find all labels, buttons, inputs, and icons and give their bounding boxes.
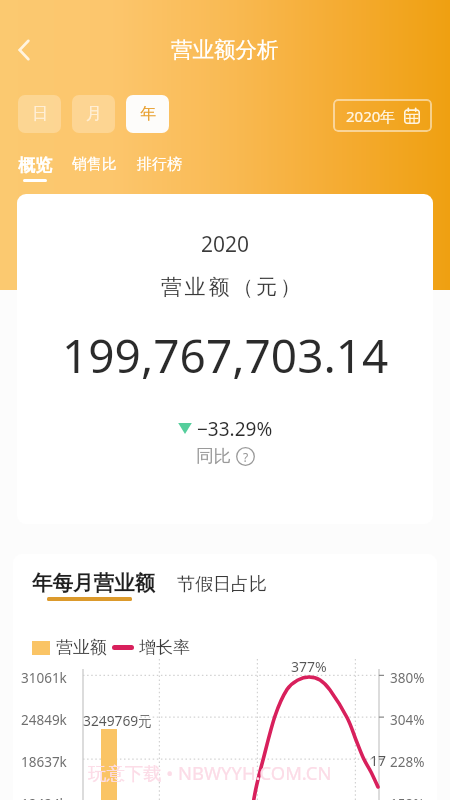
staticText: 152% <box>390 795 425 800</box>
staticText: ? <box>243 449 249 465</box>
staticText: 日 <box>32 104 48 124</box>
staticText: 304% <box>390 711 425 729</box>
staticText: 营业额分析 <box>171 36 279 63</box>
staticText: 月 <box>86 104 102 124</box>
staticText: 排行榜 <box>137 155 182 174</box>
staticText: 31061k <box>21 669 67 687</box>
staticText: 17 <box>370 751 387 770</box>
staticText: 377% <box>291 657 327 676</box>
button[interactable]: 年每月营业额 <box>32 570 155 601</box>
button[interactable]: 月 <box>72 95 115 133</box>
button[interactable]: Back <box>1 27 47 73</box>
staticText: 营业额（元） <box>161 274 304 300</box>
staticText: 概览 <box>18 155 52 176</box>
staticText: 2020 <box>201 230 250 259</box>
staticText: 年每月营业额 <box>32 570 155 596</box>
staticText: 年 <box>140 104 156 124</box>
button[interactable]: Help <box>236 447 255 466</box>
staticText: 营业额 <box>56 637 107 658</box>
staticText: 同比 <box>196 445 231 467</box>
button[interactable]: 节假日占比 <box>177 573 267 596</box>
button[interactable]: 概览 <box>18 155 52 182</box>
button[interactable]: 2020年 <box>333 99 432 132</box>
staticText: 12424k <box>21 795 67 800</box>
staticText: 玩意下载 • NBWYYH.COM.CN <box>88 760 332 785</box>
staticText: 199,767,703.14 <box>62 324 389 387</box>
button[interactable]: 销售比 <box>72 155 117 182</box>
staticText: 销售比 <box>72 155 117 174</box>
button[interactable]: 排行榜 <box>137 155 182 182</box>
button[interactable]: 年 <box>126 95 169 133</box>
button[interactable]: 日 <box>18 95 61 133</box>
staticText: 24849k <box>21 711 67 729</box>
staticText: 3249769元 <box>83 711 153 730</box>
staticText: 18637k <box>21 753 67 771</box>
staticText: −33.29% <box>197 416 273 442</box>
staticText: 228% <box>390 753 425 771</box>
staticText: 2020年 <box>346 106 396 126</box>
staticText: 增长率 <box>139 637 190 658</box>
staticText: 380% <box>390 669 425 687</box>
